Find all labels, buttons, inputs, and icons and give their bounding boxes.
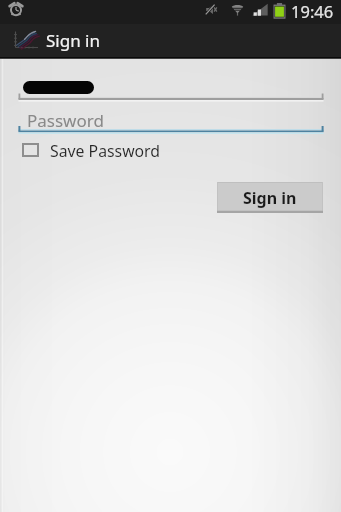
- button[interactable]: Sign in: [217, 182, 323, 213]
- button[interactable]: Save Password: [22, 140, 161, 159]
- staticText: 19:46: [291, 0, 334, 22]
- staticText: Password: [27, 109, 104, 132]
- button[interactable]: [8, 24, 108, 59]
- staticText: Sign in: [243, 187, 297, 209]
- staticText: Save Password: [50, 140, 161, 159]
- staticText: Sign in: [46, 29, 100, 52]
- button[interactable]: Password: [18, 105, 324, 134]
- button[interactable]: User name: [18, 72, 324, 101]
